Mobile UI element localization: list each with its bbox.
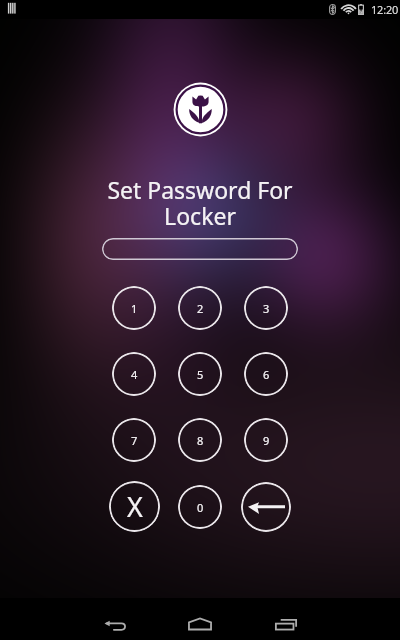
button[interactable]: Password field — [102, 238, 298, 260]
button[interactable]: 8 — [178, 418, 222, 462]
staticText: 3 — [263, 301, 270, 316]
button[interactable]: Home — [161, 598, 239, 640]
button[interactable]: 6 — [244, 352, 288, 396]
button[interactable]: 5 — [178, 352, 222, 396]
button[interactable]: App logo — [173, 82, 228, 137]
button[interactable]: Back — [75, 598, 153, 640]
staticText: 8 — [197, 433, 204, 448]
button[interactable]: X — [109, 481, 160, 532]
staticText: 12:20 — [371, 2, 399, 17]
button[interactable]: Backspace — [241, 482, 291, 532]
staticText: 6 — [263, 367, 270, 382]
staticText: 5 — [197, 367, 204, 382]
button[interactable]: 9 — [244, 418, 288, 462]
staticText: X — [127, 488, 143, 525]
staticText: 0 — [197, 500, 204, 515]
staticText: 9 — [263, 433, 270, 448]
staticText: 7 — [131, 433, 138, 448]
button[interactable]: 2 — [178, 286, 222, 330]
button[interactable]: 4 — [112, 352, 156, 396]
button[interactable]: 1 — [112, 286, 156, 330]
button[interactable]: 3 — [244, 286, 288, 330]
button[interactable]: 0 — [178, 485, 222, 529]
button[interactable]: 7 — [112, 418, 156, 462]
staticText: Set Password For Locker — [107, 174, 293, 232]
staticText: 2 — [197, 301, 204, 316]
staticText: 4 — [131, 367, 138, 382]
staticText: 1 — [131, 301, 138, 316]
button[interactable]: Recent apps — [247, 598, 325, 640]
